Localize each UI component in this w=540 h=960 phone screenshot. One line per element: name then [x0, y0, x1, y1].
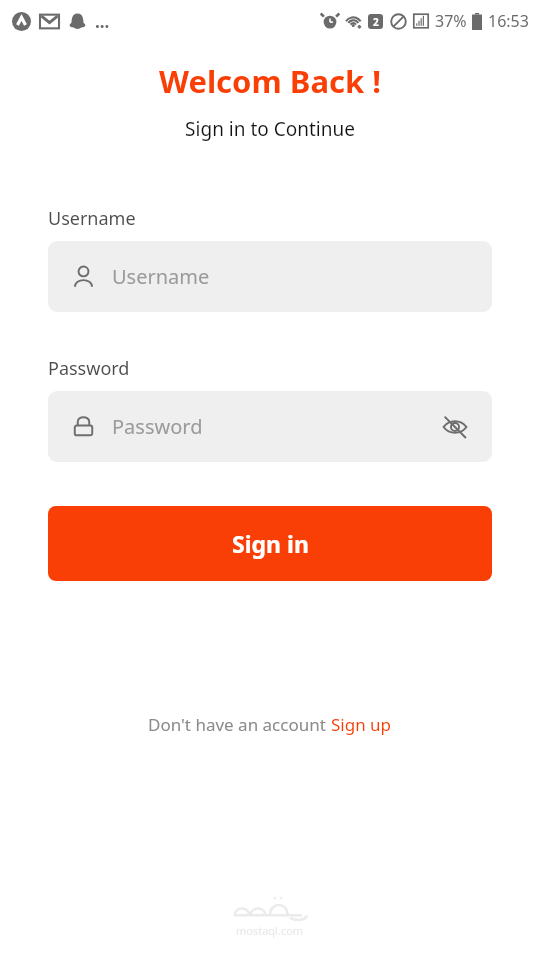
- staticText: Welcom Back !: [0, 60, 540, 102]
- staticText: Sign in: [232, 528, 309, 559]
- staticText: Username: [48, 206, 136, 231]
- button[interactable]: Sign in: [48, 506, 492, 581]
- staticText: Sign in to Continue: [0, 116, 540, 142]
- staticText: 2: [373, 15, 379, 29]
- button[interactable]: Username: [48, 241, 492, 312]
- staticText: ...: [95, 10, 110, 33]
- staticText: 16:53: [488, 10, 529, 32]
- staticText: Don't have an account: [148, 713, 331, 736]
- button[interactable]: Show password: [438, 410, 472, 444]
- button[interactable]: Sign up: [331, 713, 392, 736]
- staticText: mostaql.com: [236, 923, 304, 938]
- staticText: Password: [112, 413, 203, 440]
- staticText: Password: [48, 356, 130, 381]
- staticText: Username: [112, 263, 210, 290]
- staticText: Sign up: [331, 713, 392, 736]
- staticText: 37%: [435, 10, 467, 32]
- button[interactable]: Password: [48, 391, 492, 462]
